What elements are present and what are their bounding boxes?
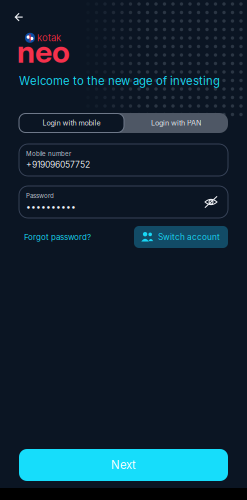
staticText: Next <box>111 458 136 472</box>
staticText: •••••••••• <box>26 201 76 212</box>
staticText: Mobile number <box>26 150 71 157</box>
button[interactable]: Switch account <box>134 226 228 248</box>
staticText: Switch account <box>158 232 220 242</box>
button[interactable]: Login with PAN <box>124 113 228 133</box>
button[interactable]: Login with mobile <box>19 113 124 132</box>
staticText: +919096057752 <box>26 159 90 170</box>
staticText: Login with mobile <box>42 119 100 127</box>
button[interactable]: Forgot password? <box>19 226 119 248</box>
button[interactable]: Next <box>19 449 228 481</box>
button[interactable]: Back <box>7 5 31 29</box>
staticText: Welcome to the new age of investing <box>19 74 220 88</box>
staticText: Password <box>26 192 54 199</box>
staticText: neo <box>17 33 70 70</box>
staticText: Forgot password? <box>24 232 91 242</box>
button[interactable]: Show password <box>202 193 220 211</box>
staticText: kotak <box>37 32 61 44</box>
staticText: Login with PAN <box>151 119 201 127</box>
